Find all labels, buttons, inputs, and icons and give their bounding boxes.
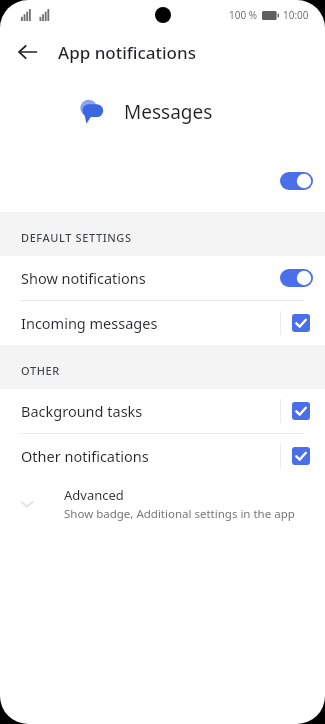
button[interactable]: Background tasks checkbox (292, 402, 310, 420)
button[interactable]: Expand advanced (0, 478, 325, 530)
staticText: Advanced (64, 486, 124, 504)
staticText: Messages (124, 99, 213, 125)
button[interactable]: Other notifications (0, 434, 325, 478)
staticText: DEFAULT SETTINGS (21, 230, 132, 245)
staticText: OTHER (21, 363, 60, 378)
button[interactable]: Other notifications checkbox (292, 447, 310, 465)
staticText: Other notifications (21, 446, 149, 466)
staticText: Incoming messages (21, 313, 158, 333)
button[interactable]: Incoming messages checkbox (292, 314, 310, 332)
button[interactable]: Back (10, 34, 46, 70)
button[interactable]: Background tasks (0, 389, 325, 433)
staticText: 10:00 (283, 8, 309, 22)
staticText: 100 % (229, 8, 258, 22)
button[interactable]: Incoming messages (0, 301, 325, 345)
staticText: Show notifications (21, 268, 146, 288)
staticText: App notifications (58, 41, 196, 64)
staticText: Show badge, Additional settings in the a… (64, 506, 295, 522)
button[interactable]: Toggle all notifications (0, 150, 325, 212)
other: Expand advanced (14, 491, 40, 517)
button[interactable]: Show notifications (0, 256, 325, 300)
staticText: Background tasks (21, 401, 143, 421)
